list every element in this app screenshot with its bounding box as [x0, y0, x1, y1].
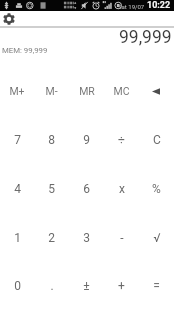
staticText: 10:22 — [147, 0, 171, 11]
staticText: x — [119, 182, 125, 196]
button[interactable]: C — [139, 115, 174, 164]
staticText: 2 — [48, 231, 55, 245]
staticText: ± — [83, 279, 90, 293]
staticText: C — [153, 133, 161, 147]
button[interactable]: + — [104, 262, 139, 310]
staticText: 1 — [14, 231, 21, 245]
button[interactable]: Backspace — [139, 66, 174, 115]
staticText: - — [120, 231, 124, 245]
staticText: 99,999 — [119, 27, 172, 48]
button[interactable]: 0 — [0, 262, 34, 310]
button[interactable]: 8 — [34, 115, 69, 164]
staticText: 7 — [14, 133, 21, 147]
button[interactable]: 4 — [0, 164, 34, 213]
button[interactable]: x — [104, 164, 139, 213]
staticText: Sat 19/07 — [118, 3, 145, 10]
staticText: ÷ — [118, 133, 125, 147]
button[interactable]: 9 — [69, 115, 104, 164]
button[interactable]: M- — [34, 66, 69, 115]
staticText: MC — [113, 85, 130, 97]
button[interactable]: MR — [69, 66, 104, 115]
staticText: M+ — [9, 85, 25, 97]
staticText: 6 — [83, 182, 90, 196]
button[interactable]: √ — [139, 213, 174, 262]
staticText: √ — [153, 231, 161, 245]
button[interactable]: M+ — [0, 66, 34, 115]
button[interactable]: ÷ — [104, 115, 139, 164]
staticText: MR — [79, 85, 95, 97]
button[interactable]: ± — [69, 262, 104, 310]
staticText: MEM: 99,999 — [2, 46, 48, 55]
staticText: 4 — [14, 182, 21, 196]
staticText: M- — [45, 85, 58, 97]
button[interactable]: - — [104, 213, 139, 262]
staticText: 8 — [48, 133, 55, 147]
staticText: 3 — [83, 231, 90, 245]
button[interactable]: % — [139, 164, 174, 213]
staticText: % — [152, 182, 161, 196]
button[interactable]: 7 — [0, 115, 34, 164]
staticText: 5 — [48, 182, 55, 196]
staticText: = — [153, 279, 160, 293]
button[interactable]: Settings — [2, 12, 16, 26]
other: Backspace — [149, 83, 165, 99]
staticText: 9 — [83, 133, 90, 147]
staticText: + — [118, 279, 125, 293]
button[interactable]: MC — [104, 66, 139, 115]
button[interactable]: 1 — [0, 213, 34, 262]
button[interactable]: 2 — [34, 213, 69, 262]
staticText: 0 — [14, 279, 21, 293]
staticText: . — [50, 279, 54, 293]
button[interactable]: 6 — [69, 164, 104, 213]
button[interactable]: = — [139, 262, 174, 310]
button[interactable]: 5 — [34, 164, 69, 213]
button[interactable]: 3 — [69, 213, 104, 262]
